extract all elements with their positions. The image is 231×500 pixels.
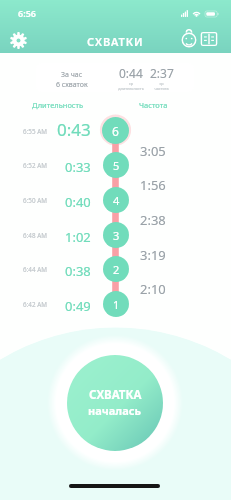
staticText: За час (61, 70, 83, 80)
staticText: 1:02 (65, 228, 91, 246)
staticText: Длительность (32, 100, 84, 110)
staticText: Частота (139, 100, 168, 110)
button[interactable]: 6:42 AM (0, 286, 231, 321)
staticText: 0:43 (57, 118, 91, 141)
button[interactable]: СХВАТКА (67, 355, 163, 451)
button[interactable]: 6:50 AM (0, 182, 231, 217)
staticText: 6:48 AM (23, 231, 47, 240)
staticText: 0:40 (65, 193, 91, 211)
staticText: СХВАТКА (89, 387, 142, 403)
button[interactable]: За час (36, 63, 194, 92)
button[interactable]: Guide (198, 28, 220, 50)
button[interactable]: 6:55 AM (0, 113, 231, 148)
staticText: 1 (113, 297, 120, 312)
staticText: 0:38 (65, 262, 91, 280)
staticText: 6:56 (18, 7, 36, 19)
staticText: 6:50 AM (23, 196, 47, 205)
staticText: 2:37 (150, 65, 174, 81)
staticText: 5 (113, 158, 120, 173)
staticText: 0:33 (65, 158, 91, 176)
staticText: 6:52 AM (23, 161, 47, 170)
staticText: 4 (113, 193, 120, 208)
button[interactable]: 6:52 AM (0, 147, 231, 182)
staticText: ср частота (154, 81, 169, 91)
button[interactable]: 6:48 AM (0, 217, 231, 252)
staticText: 3 (113, 228, 120, 243)
staticText: 6:55 AM (23, 127, 47, 136)
staticText: 6 (112, 123, 119, 139)
staticText: 6:42 AM (23, 300, 47, 309)
button[interactable]: Baby profile (178, 28, 200, 50)
staticText: 6 схваток (56, 80, 88, 90)
staticText: 0:49 (65, 297, 91, 315)
button[interactable]: Settings (6, 28, 30, 52)
staticText: 2:38 (140, 211, 166, 229)
staticText: 2 (113, 262, 120, 277)
staticText: 3:19 (140, 246, 166, 264)
staticText: 6:44 AM (23, 265, 47, 274)
button[interactable]: 6:44 AM (0, 251, 231, 286)
staticText: ср длительность (118, 81, 144, 91)
staticText: 1:56 (140, 176, 166, 194)
staticText: началась (88, 403, 142, 418)
staticText: 0:44 (119, 65, 143, 81)
staticText: СХВАТКИ (87, 34, 144, 49)
staticText: 2:10 (140, 280, 166, 298)
staticText: 3:05 (140, 142, 166, 160)
